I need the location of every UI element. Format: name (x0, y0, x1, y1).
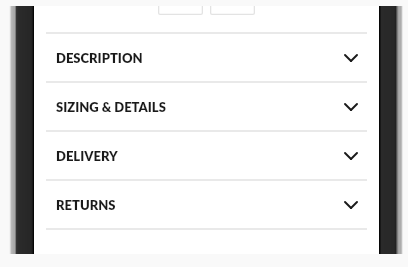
staticText: DELIVERY (56, 148, 118, 164)
button[interactable]: RETURNS (34, 179, 379, 228)
staticText: RETURNS (56, 197, 116, 213)
other: Expand DELIVERY (344, 150, 358, 162)
other: Expand DESCRIPTION (344, 52, 358, 64)
button[interactable] (158, 6, 203, 15)
button[interactable] (210, 6, 255, 15)
button[interactable]: DELIVERY (34, 130, 379, 179)
staticText: DESCRIPTION (56, 50, 143, 66)
staticText: SIZING & DETAILS (56, 99, 166, 115)
other: Expand SIZING & DETAILS (344, 101, 358, 113)
button[interactable]: DESCRIPTION (34, 32, 379, 81)
other: Expand RETURNS (344, 199, 358, 211)
button[interactable]: SIZING & DETAILS (34, 81, 379, 130)
